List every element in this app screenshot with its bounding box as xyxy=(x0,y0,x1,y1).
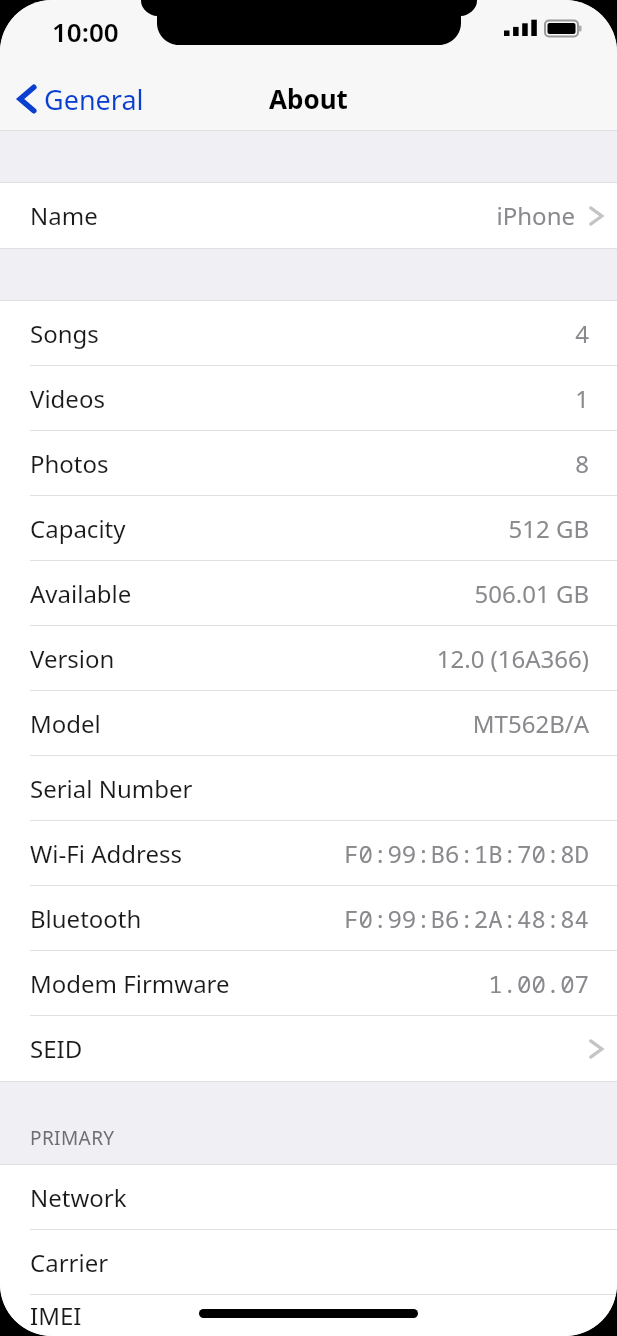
staticText: 10:00 xyxy=(52,14,119,49)
staticText: About xyxy=(269,81,348,116)
staticText: Modem Firmware xyxy=(30,967,230,1000)
button[interactable]: Songs xyxy=(0,301,617,366)
staticText: Serial Number xyxy=(30,772,193,805)
staticText: Capacity xyxy=(30,512,126,545)
button[interactable]: Modem Firmware xyxy=(0,951,617,1016)
button[interactable]: Model xyxy=(0,691,617,756)
staticText: 8 xyxy=(575,447,589,480)
button[interactable]: Available xyxy=(0,561,617,626)
staticText: 12.0 (16A366) xyxy=(436,642,589,675)
staticText: Model xyxy=(30,707,101,740)
staticText: Available xyxy=(30,577,132,610)
button[interactable]: Videos xyxy=(0,366,617,431)
staticText: iPhone xyxy=(496,199,575,232)
button[interactable]: Carrier xyxy=(0,1230,617,1295)
staticText: Version xyxy=(30,642,115,675)
staticText: Carrier xyxy=(30,1246,109,1279)
button[interactable]: Serial Number xyxy=(0,756,617,821)
staticText: Wi-Fi Address xyxy=(30,837,182,870)
button[interactable]: SEID xyxy=(0,1016,617,1081)
staticText: 512 GB xyxy=(508,512,589,545)
staticText: PRIMARY xyxy=(30,1125,115,1151)
staticText: F0:99:B6:1B:70:8D xyxy=(344,837,589,870)
button[interactable]: Photos xyxy=(0,431,617,496)
button[interactable]: IMEI xyxy=(0,1295,617,1336)
button[interactable]: Bluetooth xyxy=(0,886,617,951)
staticText: F0:99:B6:2A:48:84 xyxy=(344,902,589,935)
staticText: Network xyxy=(30,1181,127,1214)
staticText: Videos xyxy=(30,382,105,415)
staticText: General xyxy=(44,81,144,118)
button[interactable]: Version xyxy=(0,626,617,691)
button[interactable]: Name xyxy=(0,183,617,248)
staticText: MT562B/A xyxy=(472,707,589,740)
staticText: IMEI xyxy=(30,1299,82,1332)
staticText: Songs xyxy=(30,317,99,350)
staticText: 4 xyxy=(575,317,589,350)
button[interactable]: General xyxy=(0,71,156,127)
button[interactable]: Network xyxy=(0,1165,617,1230)
staticText: SEID xyxy=(30,1032,83,1065)
button[interactable]: Wi-Fi Address xyxy=(0,821,617,886)
staticText: 506.01 GB xyxy=(474,577,589,610)
staticText: Name xyxy=(30,199,98,232)
staticText: Bluetooth xyxy=(30,902,142,935)
staticText: 1 xyxy=(575,382,589,415)
button[interactable]: Capacity xyxy=(0,496,617,561)
staticText: 1.00.07 xyxy=(488,967,589,1000)
staticText: Photos xyxy=(30,447,109,480)
